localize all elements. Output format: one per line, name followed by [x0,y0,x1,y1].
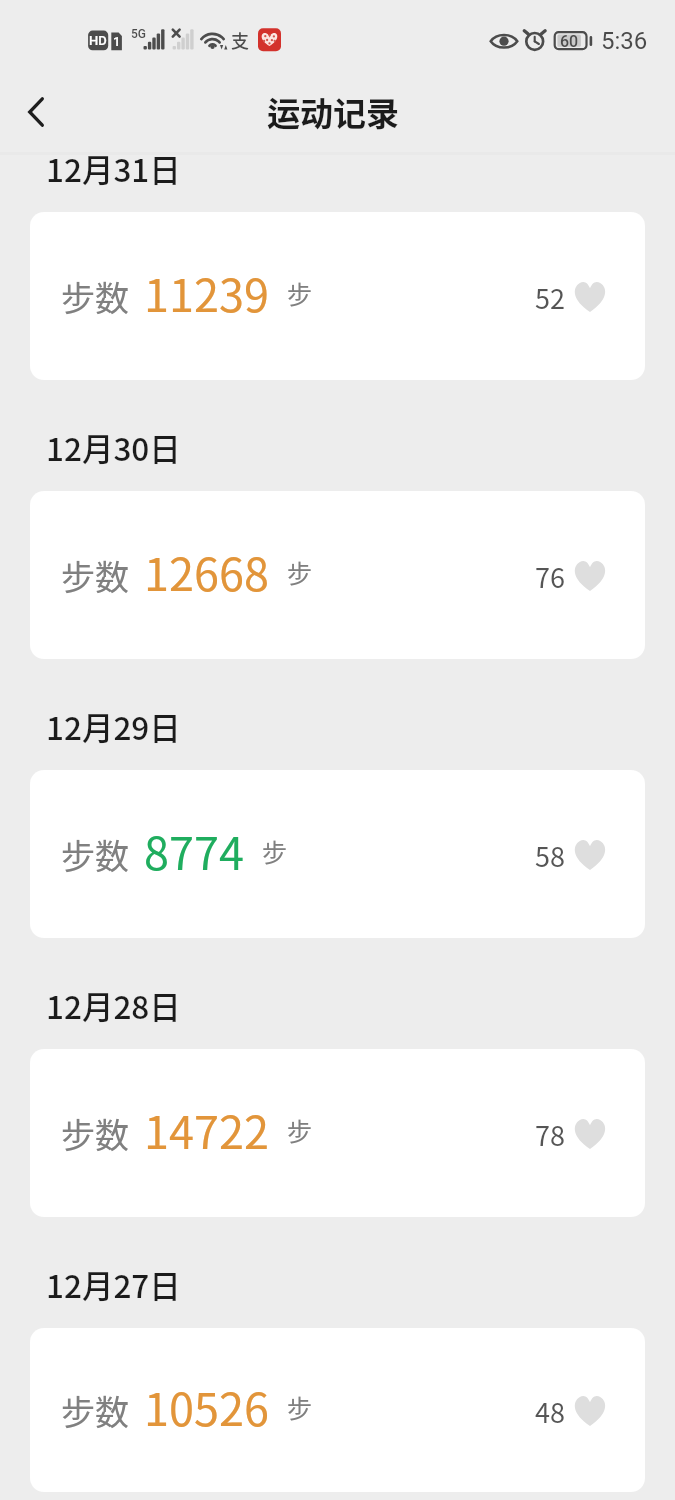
staticText: 12月31日 [46,145,181,191]
staticText: 5G [131,27,146,41]
staticText: 11239 [144,260,269,325]
staticText: 12月30日 [46,424,181,470]
button[interactable]: 步数 [30,212,645,380]
staticText: 8774 [144,818,244,883]
staticText: 运动记录 [267,88,399,136]
staticText: 76 [535,557,565,596]
staticText: 60 [560,32,579,51]
staticText: 14722 [144,1097,269,1162]
staticText: 步 [287,1112,313,1148]
staticText: 步数 [61,1386,129,1435]
staticText: 步数 [61,272,129,321]
button[interactable]: 步数 [30,1049,645,1217]
staticText: 78 [535,1115,565,1154]
staticText: 48 [535,1392,565,1431]
staticText: 步 [262,833,288,869]
staticText: 步 [287,1389,313,1425]
staticText: 1 [113,34,121,49]
staticText: 58 [535,836,565,875]
staticText: 步数 [61,551,129,600]
staticText: HD [89,33,107,48]
staticText: 步数 [61,830,129,879]
staticText: 10526 [144,1374,269,1439]
staticText: 12668 [144,539,269,604]
button[interactable]: 步数 [30,491,645,659]
staticText: 支 [231,27,249,53]
staticText: 52 [535,278,565,317]
staticText: 步数 [61,1109,129,1158]
staticText: 5:36 [601,27,648,55]
staticText: 12月29日 [46,703,181,749]
button[interactable]: 步数 [30,770,645,938]
staticText: 12月27日 [46,1261,181,1307]
button[interactable]: 步数 [30,1328,645,1492]
staticText: 12月28日 [46,982,181,1028]
staticText: 步 [287,275,313,311]
staticText: 步 [287,554,313,590]
button[interactable]: Back [10,86,62,138]
